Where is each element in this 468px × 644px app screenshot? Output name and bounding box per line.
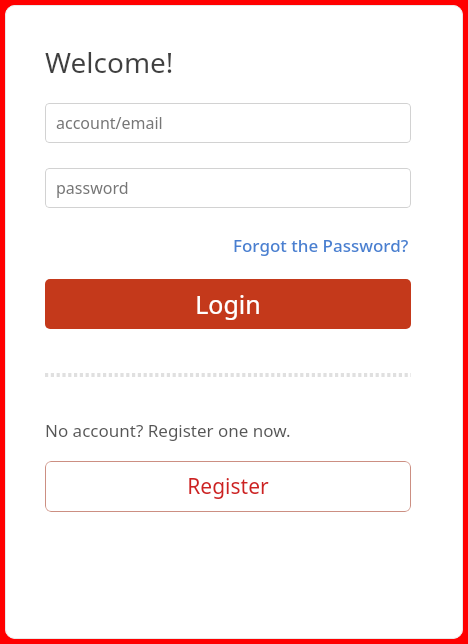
button[interactable]: account/email — [45, 103, 411, 143]
button[interactable]: password — [45, 168, 411, 208]
staticText: password — [56, 177, 129, 199]
button[interactable]: Forgot the Password? — [231, 232, 411, 259]
staticText: Register — [187, 472, 269, 501]
staticText: Login — [195, 287, 261, 321]
staticText: Welcome! — [45, 43, 174, 81]
button[interactable]: Login — [45, 279, 411, 329]
staticText: No account? Register one now. — [45, 419, 291, 442]
staticText: Forgot the Password? — [233, 234, 409, 257]
staticText: account/email — [56, 112, 163, 134]
button[interactable]: Register — [45, 461, 411, 512]
